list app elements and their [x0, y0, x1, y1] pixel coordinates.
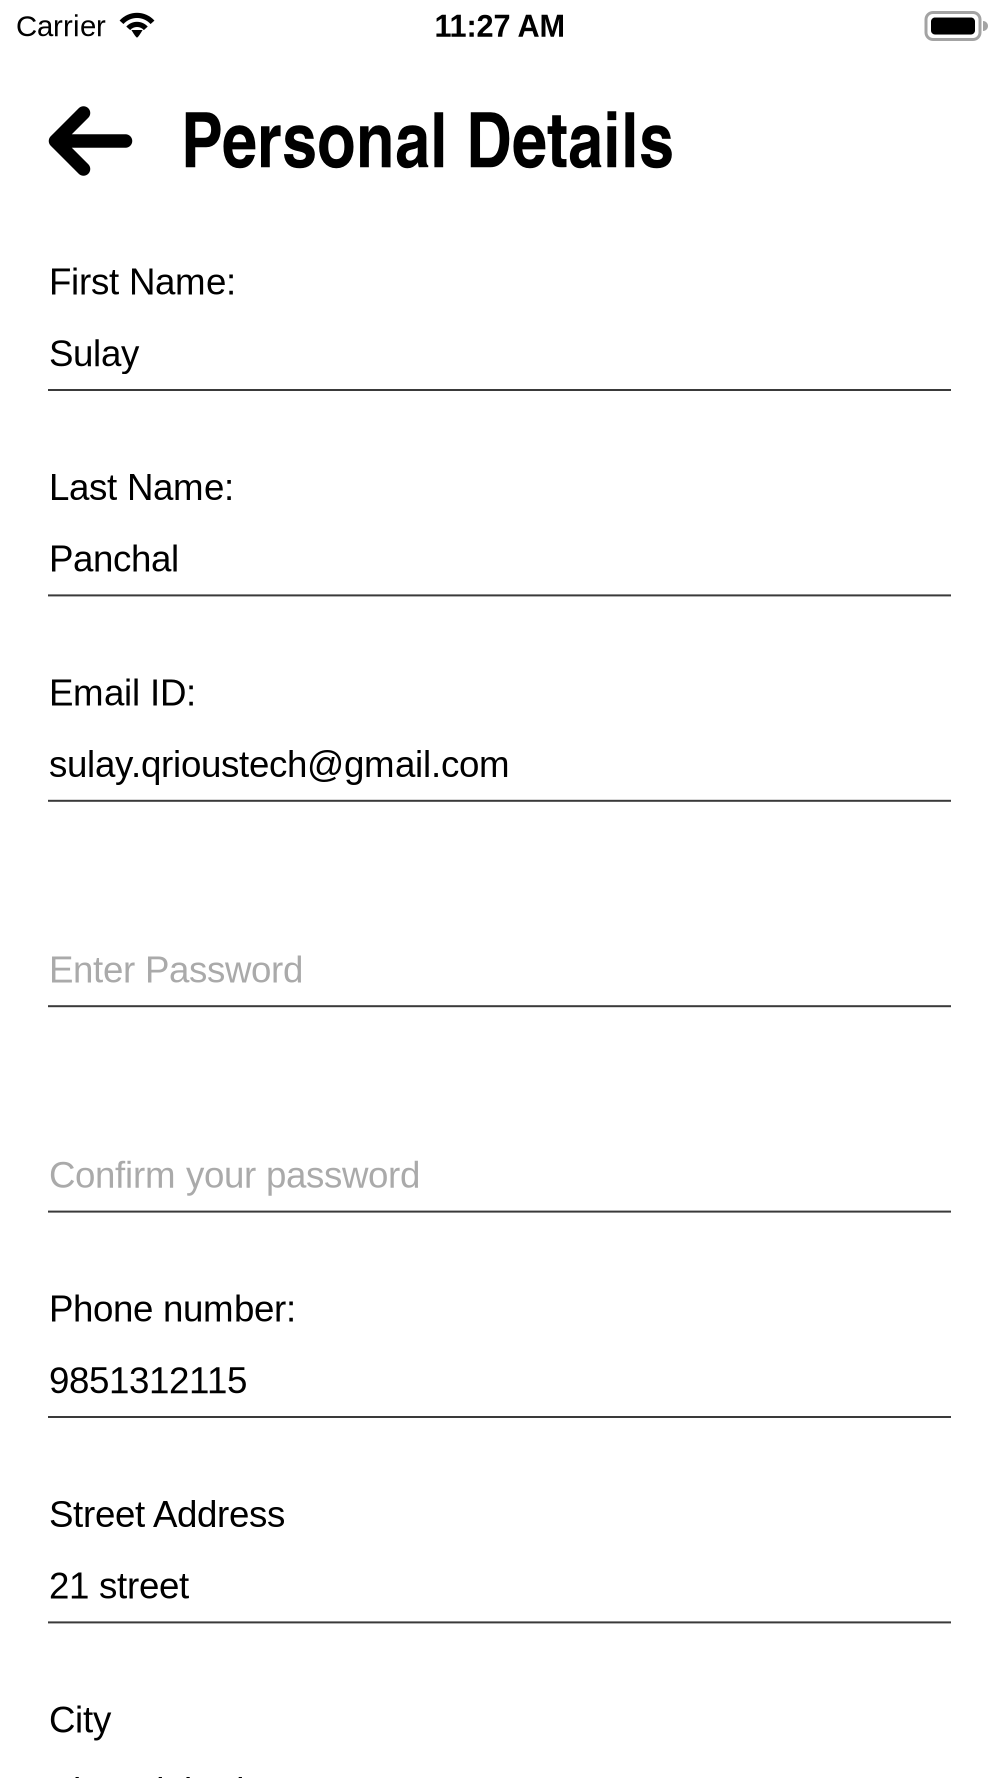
button[interactable]: Confirm your password — [48, 1007, 951, 1213]
staticText: Last Name: — [49, 467, 234, 508]
staticText: Panchal — [49, 538, 179, 579]
button[interactable]: Phone number: — [48, 1213, 951, 1418]
staticText: Personal Details — [181, 82, 674, 191]
staticText: 21 street — [49, 1565, 189, 1606]
staticText: Enter Password — [49, 949, 303, 990]
staticText: 11:27 AM — [434, 9, 565, 43]
button[interactable]: City — [48, 1623, 951, 1778]
staticText: 9851312115 — [49, 1360, 247, 1401]
staticText: Email ID: — [49, 672, 196, 713]
staticText: City — [49, 1699, 111, 1740]
button[interactable]: Last Name: — [48, 391, 951, 596]
staticText: sulay.qrioustech@gmail.com — [49, 744, 510, 785]
staticText: Sulay — [49, 333, 139, 374]
staticText: Carrier — [16, 10, 106, 42]
button[interactable]: Street Address — [48, 1418, 951, 1623]
staticText: Street Address — [49, 1494, 285, 1535]
staticText: Confirm your password — [49, 1155, 420, 1196]
staticText: Phone number: — [49, 1288, 296, 1329]
button[interactable]: Enter Password — [48, 802, 951, 1007]
staticText: First Name: — [49, 261, 236, 302]
button[interactable]: Back — [36, 87, 144, 195]
button[interactable]: Email ID: — [48, 596, 951, 802]
staticText: Ahmedabad — [49, 1771, 244, 1778]
button[interactable]: First Name: — [48, 186, 951, 391]
